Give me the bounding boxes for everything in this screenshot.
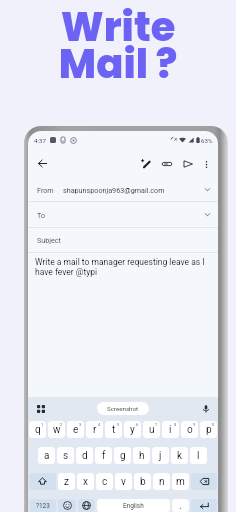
staticText: 1 bbox=[41, 422, 44, 427]
staticText: Screenshot bbox=[107, 405, 139, 412]
staticText: 9 bbox=[193, 422, 196, 427]
staticText: q bbox=[35, 424, 41, 436]
staticText: j bbox=[159, 450, 162, 462]
staticText: 4:37 bbox=[34, 137, 46, 144]
staticText: 0 bbox=[212, 422, 215, 427]
staticText: . bbox=[179, 500, 182, 512]
button[interactable]: r bbox=[86, 421, 103, 438]
button[interactable]: English bbox=[97, 499, 170, 512]
button[interactable]: b bbox=[134, 473, 151, 490]
button[interactable]: Attach file bbox=[157, 154, 176, 173]
staticText: i bbox=[169, 424, 172, 436]
button[interactable]: n bbox=[153, 473, 170, 490]
button[interactable]: Language bbox=[78, 499, 95, 512]
button[interactable]: ?123 bbox=[29, 499, 56, 512]
staticText: 6 bbox=[136, 422, 139, 427]
button[interactable]: Enter bbox=[191, 499, 217, 512]
staticText: m bbox=[176, 476, 185, 488]
button[interactable]: m bbox=[172, 473, 189, 490]
staticText: 8 bbox=[174, 422, 177, 427]
button[interactable]: o bbox=[181, 421, 198, 438]
button[interactable]: y bbox=[124, 421, 141, 438]
staticText: c bbox=[102, 476, 108, 488]
staticText: To bbox=[37, 211, 46, 219]
button[interactable]: . bbox=[172, 499, 189, 512]
button[interactable]: v bbox=[115, 473, 132, 490]
button[interactable]: Voice input bbox=[199, 402, 212, 415]
button[interactable]: Back bbox=[33, 154, 52, 173]
staticText: d bbox=[82, 450, 88, 462]
button[interactable]: e bbox=[67, 421, 84, 438]
staticText: 3 bbox=[79, 422, 82, 427]
staticText: shapunspoonja963@gmail.com bbox=[63, 186, 165, 194]
button[interactable]: More options bbox=[198, 156, 214, 172]
button[interactable]: t bbox=[105, 421, 122, 438]
staticText: z bbox=[64, 476, 69, 488]
staticText: 4 bbox=[98, 422, 101, 427]
staticText: n bbox=[159, 476, 165, 488]
staticText: g bbox=[120, 450, 126, 462]
button[interactable]: To bbox=[28, 202, 218, 228]
staticText: 5 bbox=[117, 422, 120, 427]
staticText: p bbox=[206, 424, 212, 436]
button[interactable]: Subject bbox=[28, 228, 218, 253]
staticText: y bbox=[130, 424, 135, 436]
staticText: x bbox=[83, 476, 88, 488]
staticText: f bbox=[102, 450, 106, 462]
button[interactable]: d bbox=[76, 447, 93, 464]
button[interactable]: Shift bbox=[29, 473, 56, 490]
staticText: Subject bbox=[37, 236, 61, 244]
staticText: t bbox=[112, 424, 116, 436]
button[interactable]: From bbox=[28, 178, 218, 202]
staticText: k bbox=[177, 450, 183, 462]
staticText: Write Mail ? bbox=[0, 0, 236, 92]
staticText: Write a mail to manager requesting leave… bbox=[35, 257, 214, 277]
button[interactable]: x bbox=[77, 473, 94, 490]
button[interactable]: u bbox=[143, 421, 160, 438]
staticText: h bbox=[139, 450, 145, 462]
button[interactable]: Send bbox=[178, 154, 197, 173]
button[interactable]: p bbox=[200, 421, 217, 438]
button[interactable]: c bbox=[96, 473, 113, 490]
staticText: u bbox=[149, 424, 155, 436]
button[interactable]: k bbox=[171, 447, 188, 464]
staticText: l bbox=[197, 450, 200, 462]
staticText: English bbox=[123, 502, 144, 510]
staticText: ?123 bbox=[36, 502, 50, 510]
button[interactable]: l bbox=[190, 447, 207, 464]
button[interactable]: f bbox=[95, 447, 112, 464]
staticText: w bbox=[53, 424, 61, 436]
button[interactable]: h bbox=[133, 447, 150, 464]
button[interactable]: w bbox=[48, 421, 65, 438]
staticText: 7 bbox=[155, 422, 158, 427]
button[interactable]: Backspace bbox=[191, 473, 217, 490]
staticText: a bbox=[44, 450, 50, 462]
button[interactable]: Emoji bbox=[58, 499, 76, 512]
staticText: r bbox=[93, 424, 97, 436]
button[interactable]: g bbox=[114, 447, 131, 464]
button[interactable]: q bbox=[29, 421, 46, 438]
button[interactable]: Toolbar bbox=[34, 402, 47, 415]
button[interactable]: i bbox=[162, 421, 179, 438]
button[interactable]: z bbox=[58, 473, 75, 490]
button[interactable]: Help me write bbox=[136, 154, 155, 173]
button[interactable]: a bbox=[38, 447, 55, 464]
staticText: s bbox=[63, 450, 69, 462]
staticText: From bbox=[37, 186, 54, 194]
staticText: 63% bbox=[201, 137, 213, 144]
button[interactable]: Screenshot bbox=[97, 402, 149, 415]
staticText: v bbox=[121, 476, 126, 488]
button[interactable]: j bbox=[152, 447, 169, 464]
button[interactable]: s bbox=[57, 447, 74, 464]
staticText: b bbox=[140, 476, 146, 488]
staticText: o bbox=[187, 424, 193, 436]
staticText: 2 bbox=[60, 422, 63, 427]
staticText: e bbox=[73, 424, 79, 436]
